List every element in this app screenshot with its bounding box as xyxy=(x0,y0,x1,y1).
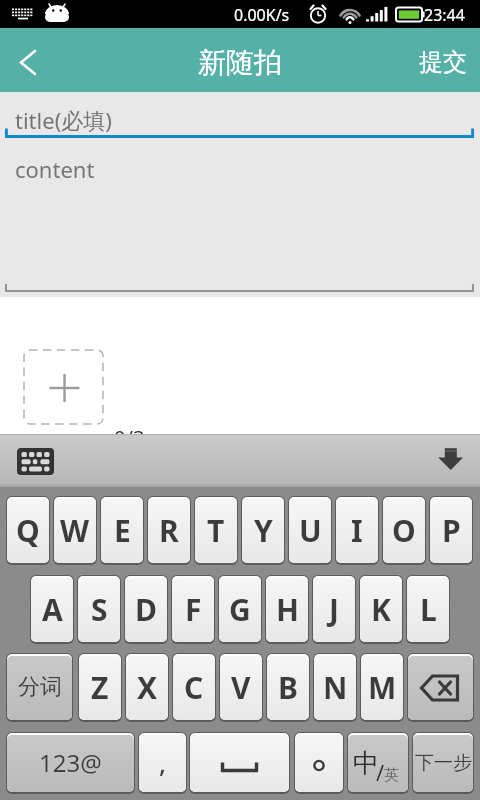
button[interactable]: N xyxy=(314,656,356,720)
staticText: content xyxy=(15,154,95,184)
button[interactable]: Keyboard settings xyxy=(17,448,54,475)
button[interactable]: Add photo xyxy=(23,349,104,425)
staticText: W xyxy=(60,510,90,551)
button[interactable]: 123@ xyxy=(7,735,134,792)
staticText: L xyxy=(420,589,437,630)
button[interactable]: Q xyxy=(7,499,49,563)
staticText: C xyxy=(184,667,204,708)
staticText: T xyxy=(207,510,225,551)
staticText: , xyxy=(159,745,167,780)
staticText: N xyxy=(323,667,348,708)
button[interactable]: R xyxy=(148,499,190,563)
staticText: Z xyxy=(91,667,109,708)
staticText: 下一步 xyxy=(415,751,472,775)
staticText: 分词 xyxy=(18,673,62,701)
button[interactable]: Hide keyboard xyxy=(433,444,469,486)
staticText: G xyxy=(229,589,251,630)
button[interactable]: B xyxy=(267,656,309,720)
staticText: 新随拍 xyxy=(198,45,282,80)
staticText: 23:44 xyxy=(424,4,465,26)
staticText: S xyxy=(91,589,108,630)
button[interactable]: G xyxy=(219,578,261,642)
button[interactable]: V xyxy=(220,656,262,720)
button[interactable]: Back xyxy=(0,28,56,92)
staticText: 中 xyxy=(353,747,379,780)
button[interactable]: S xyxy=(78,578,120,642)
staticText: Y xyxy=(254,510,273,551)
button[interactable]: J xyxy=(313,578,355,642)
staticText: 123@ xyxy=(39,746,102,779)
staticText: H xyxy=(276,589,299,630)
staticText: 0/3 xyxy=(114,424,145,451)
button[interactable]: 分词 xyxy=(7,656,72,720)
button[interactable]: T xyxy=(195,499,237,563)
staticText: F xyxy=(185,589,202,630)
staticText: V xyxy=(231,667,251,708)
staticText: 0.00K/s xyxy=(234,4,290,26)
staticText: 提交 xyxy=(419,47,467,77)
button[interactable]: P xyxy=(430,499,472,563)
button[interactable]: W xyxy=(54,499,96,563)
button[interactable]: F xyxy=(172,578,214,642)
button[interactable]: D xyxy=(125,578,167,642)
button[interactable]: 提交 xyxy=(401,28,480,92)
button[interactable]: Z xyxy=(79,656,121,720)
button[interactable]: L xyxy=(407,578,449,642)
staticText: B xyxy=(278,667,298,708)
button[interactable]: Y xyxy=(242,499,284,563)
staticText: Q xyxy=(16,510,40,551)
button[interactable]: E xyxy=(101,499,143,563)
staticText: A xyxy=(42,589,63,630)
button[interactable] xyxy=(190,735,289,792)
button[interactable] xyxy=(295,735,343,792)
staticText: P xyxy=(442,510,461,551)
button[interactable]: A xyxy=(31,578,73,642)
staticText: U xyxy=(299,510,322,551)
button[interactable]: H xyxy=(266,578,308,642)
staticText: / xyxy=(376,757,385,787)
staticText: M xyxy=(368,667,397,708)
button[interactable]: C xyxy=(173,656,215,720)
button[interactable]: 中 xyxy=(348,735,408,792)
staticText: I xyxy=(351,510,363,551)
button[interactable]: M xyxy=(361,656,403,720)
staticText: X xyxy=(137,667,158,708)
button[interactable]: U xyxy=(289,499,331,563)
staticText: D xyxy=(135,589,157,630)
button[interactable]: K xyxy=(360,578,402,642)
button[interactable] xyxy=(408,656,473,720)
staticText: title(必填) xyxy=(15,105,112,135)
staticText: E xyxy=(114,510,131,551)
staticText: K xyxy=(371,589,391,630)
staticText: 英 xyxy=(384,766,399,785)
button[interactable]: , xyxy=(139,735,186,792)
button[interactable]: X xyxy=(126,656,168,720)
staticText: J xyxy=(329,589,339,630)
button[interactable]: O xyxy=(383,499,425,563)
button[interactable]: I xyxy=(336,499,378,563)
staticText: O xyxy=(392,510,416,551)
staticText: R xyxy=(159,510,179,551)
button[interactable]: 下一步 xyxy=(413,735,473,792)
